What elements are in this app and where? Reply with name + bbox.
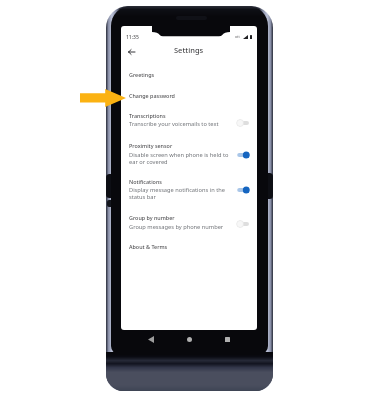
staticText: Group messages by phone number — [129, 223, 224, 231]
button[interactable]: Back — [143, 331, 159, 347]
button[interactable]: About & Terms — [121, 240, 257, 254]
staticText: Display message notifications in the — [129, 186, 225, 194]
button[interactable]: Navigate up — [124, 44, 139, 59]
button[interactable]: Group by number — [121, 211, 257, 231]
staticText: Disable screen when phone is held to — [129, 151, 229, 159]
button[interactable]: Toggle — [236, 186, 250, 194]
button[interactable]: Change password — [121, 89, 257, 103]
staticText: Notifications — [129, 178, 162, 185]
button[interactable]: Home — [181, 331, 197, 347]
button[interactable]: Proximity sensor — [121, 139, 257, 166]
button[interactable]: Toggle — [236, 220, 250, 228]
staticText: Settings — [174, 45, 204, 55]
button[interactable]: Notifications — [121, 175, 257, 202]
button[interactable]: Greetings — [121, 68, 257, 82]
button[interactable]: Transcriptions — [121, 109, 257, 128]
staticText: Proximity sensor — [129, 142, 173, 149]
button[interactable]: Toggle — [236, 151, 250, 159]
staticText: ott — [235, 34, 240, 39]
staticText: ear or covered — [129, 158, 168, 166]
staticText: About & Terms — [129, 243, 168, 250]
staticText: Transcriptions — [129, 112, 166, 119]
button[interactable]: Recent apps — [219, 331, 235, 347]
staticText: Change password — [129, 92, 175, 99]
staticText: 11:35 — [126, 34, 139, 41]
staticText: Greetings — [129, 71, 155, 78]
staticText: Group by number — [129, 214, 175, 221]
staticText: status bar — [129, 193, 156, 201]
staticText: Transcribe your voicemails to text — [129, 120, 219, 128]
button[interactable]: Toggle — [236, 119, 250, 127]
